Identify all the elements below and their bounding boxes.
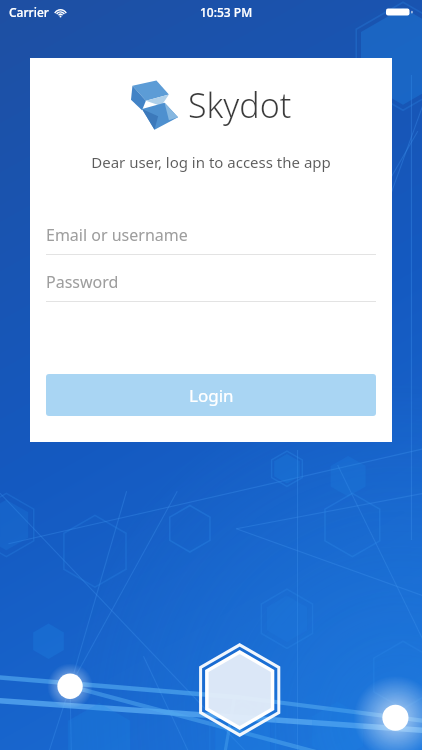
button[interactable]: Password <box>46 263 376 302</box>
staticText: Email or username <box>46 224 188 246</box>
staticText: Login <box>189 384 234 407</box>
staticText: Skydot <box>188 82 292 128</box>
staticText: 10:53 PM <box>200 4 253 20</box>
staticText: Carrier <box>9 4 49 20</box>
button[interactable]: Email or username <box>46 216 376 255</box>
staticText: Password <box>46 271 119 293</box>
button[interactable]: Login <box>46 374 376 416</box>
staticText: Dear user, log in to access the app <box>30 152 392 172</box>
